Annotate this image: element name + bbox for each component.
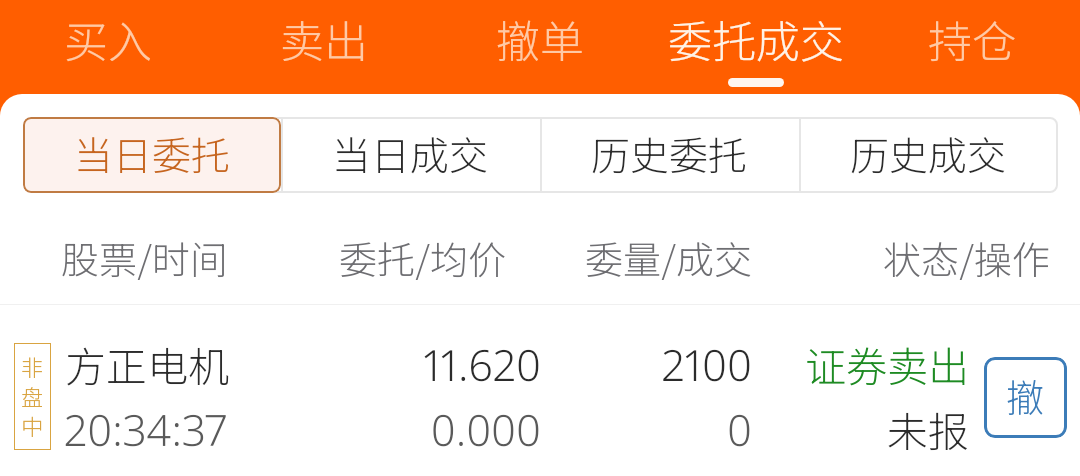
- staticText: 状态/操作: [883, 230, 1050, 280]
- button[interactable]: 撤单: [984, 357, 1067, 438]
- staticText: 当日成交: [332, 125, 489, 181]
- staticText: 撤: [1006, 368, 1045, 423]
- button[interactable]: 撤单: [432, 0, 648, 94]
- staticText: 方正电机: [65, 334, 229, 393]
- staticText: 中: [21, 409, 44, 441]
- staticText: 20:34:37: [64, 400, 228, 459]
- button[interactable]: 委托成交: [648, 0, 864, 94]
- button[interactable]: 当日委托: [23, 117, 281, 193]
- staticText: 历史委托: [591, 125, 748, 181]
- staticText: 委托/均价: [339, 230, 506, 280]
- staticText: 证券卖出: [769, 334, 969, 393]
- staticText: 2100: [552, 335, 752, 394]
- button[interactable]: 当日成交: [281, 117, 540, 193]
- staticText: 11.620: [291, 335, 541, 394]
- staticText: 当日委托: [74, 125, 231, 181]
- staticText: 撤单: [496, 7, 584, 71]
- staticText: 历史成交: [850, 125, 1007, 181]
- button[interactable]: 非: [0, 305, 1080, 476]
- staticText: 持仓: [928, 7, 1016, 71]
- button[interactable]: 买入: [0, 0, 216, 94]
- staticText: 盘: [21, 380, 44, 412]
- button[interactable]: 历史成交: [799, 117, 1058, 193]
- staticText: 未报: [769, 399, 969, 458]
- staticText: 买入: [64, 7, 152, 71]
- staticText: 卖出: [280, 7, 368, 71]
- staticText: 非: [21, 350, 44, 382]
- button[interactable]: 卖出: [216, 0, 432, 94]
- button[interactable]: 历史委托: [540, 117, 799, 193]
- staticText: 0: [552, 400, 752, 459]
- staticText: 委量/成交: [585, 230, 752, 280]
- button[interactable]: 持仓: [864, 0, 1080, 94]
- staticText: 委托成交: [668, 7, 844, 71]
- staticText: 股票/时间: [61, 230, 228, 280]
- staticText: 0.000: [291, 400, 541, 459]
